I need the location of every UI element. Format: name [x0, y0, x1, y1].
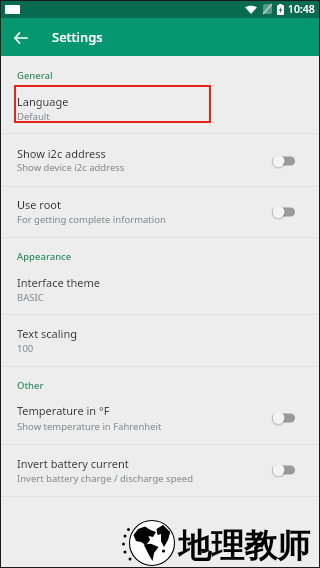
button[interactable]	[0, 444, 320, 496]
staticText: Show device i2c address	[17, 161, 125, 174]
button[interactable]: Back	[7, 18, 33, 56]
staticText: Use root	[17, 197, 61, 212]
staticText: Show temperature in Fahrenheit	[17, 420, 162, 433]
staticText: Interface theme	[17, 275, 101, 290]
staticText: 地理教师	[178, 525, 310, 567]
staticText: Language	[17, 94, 69, 109]
button[interactable]: Toggle	[268, 407, 300, 429]
button[interactable]	[0, 134, 320, 185]
staticText: Show i2c address	[17, 146, 106, 161]
staticText: General	[17, 69, 53, 82]
button[interactable]	[0, 392, 320, 443]
button[interactable]	[0, 186, 320, 237]
staticText: Settings	[52, 28, 103, 46]
staticText: Invert battery charge / discharge speed	[17, 472, 194, 485]
staticText: Appearance	[17, 250, 72, 263]
staticText: 100	[17, 342, 34, 355]
staticText: Other	[17, 379, 44, 392]
button[interactable]	[0, 85, 320, 123]
button[interactable]	[0, 315, 320, 366]
staticText: BASIC	[17, 291, 44, 304]
staticText: Default	[17, 110, 50, 123]
button[interactable]: Toggle	[268, 201, 300, 223]
staticText: Text scaling	[17, 326, 77, 341]
staticText: Temperature in °F	[17, 403, 110, 418]
button[interactable]: Toggle	[268, 459, 300, 481]
button[interactable]: Toggle	[268, 150, 300, 172]
staticText: Invert battery current	[17, 456, 129, 471]
button[interactable]	[0, 263, 320, 314]
staticText: 10:48	[288, 2, 315, 16]
staticText: For getting complete information	[17, 213, 166, 226]
